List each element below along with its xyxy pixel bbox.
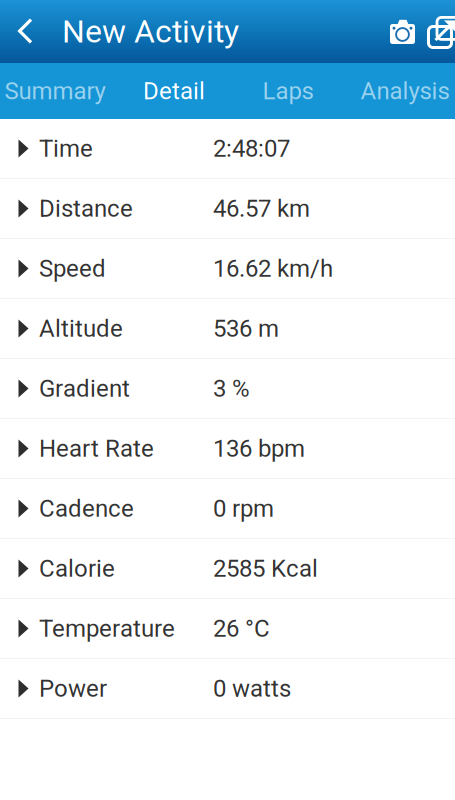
- staticText: 46.57 km: [213, 194, 310, 222]
- staticText: 2585 Kcal: [213, 554, 318, 582]
- staticText: Cadence: [39, 494, 134, 522]
- staticText: 16.62 km/h: [213, 254, 333, 282]
- staticText: Analysis: [360, 77, 449, 105]
- staticText: 0 rpm: [213, 494, 274, 522]
- staticText: Temperature: [39, 614, 175, 642]
- button[interactable]: Detail: [110, 63, 231, 119]
- staticText: 26 °C: [213, 614, 270, 642]
- staticText: Heart Rate: [39, 434, 154, 462]
- button[interactable]: Time: [0, 119, 455, 179]
- staticText: Time: [39, 134, 93, 162]
- staticText: Detail: [143, 77, 205, 105]
- staticText: Altitude: [39, 314, 123, 342]
- button[interactable]: Laps: [231, 63, 345, 119]
- staticText: 536 m: [213, 314, 279, 342]
- staticText: Gradient: [39, 374, 130, 402]
- staticText: 0 watts: [213, 674, 291, 702]
- staticText: Laps: [262, 77, 313, 105]
- button[interactable]: Cadence: [0, 479, 455, 539]
- staticText: Calorie: [39, 554, 115, 582]
- button[interactable]: Power: [0, 659, 455, 719]
- staticText: Power: [39, 674, 107, 702]
- staticText: 136 bpm: [213, 434, 305, 462]
- button[interactable]: Share: [427, 0, 455, 63]
- staticText: New Activity: [62, 13, 239, 50]
- button[interactable]: Gradient: [0, 359, 455, 419]
- button[interactable]: Analysis: [345, 63, 455, 119]
- button[interactable]: Temperature: [0, 599, 455, 659]
- button[interactable]: Heart Rate: [0, 419, 455, 479]
- staticText: Summary: [4, 77, 105, 105]
- staticText: 3 %: [213, 374, 250, 402]
- staticText: Distance: [39, 194, 133, 222]
- button[interactable]: Camera: [379, 0, 427, 63]
- button[interactable]: Back: [0, 0, 51, 63]
- button[interactable]: Speed: [0, 239, 455, 299]
- button[interactable]: Summary: [0, 63, 110, 119]
- button[interactable]: Calorie: [0, 539, 455, 599]
- button[interactable]: Altitude: [0, 299, 455, 359]
- staticText: 2:48:07: [213, 134, 290, 162]
- button[interactable]: Distance: [0, 179, 455, 239]
- staticText: Speed: [39, 254, 106, 282]
